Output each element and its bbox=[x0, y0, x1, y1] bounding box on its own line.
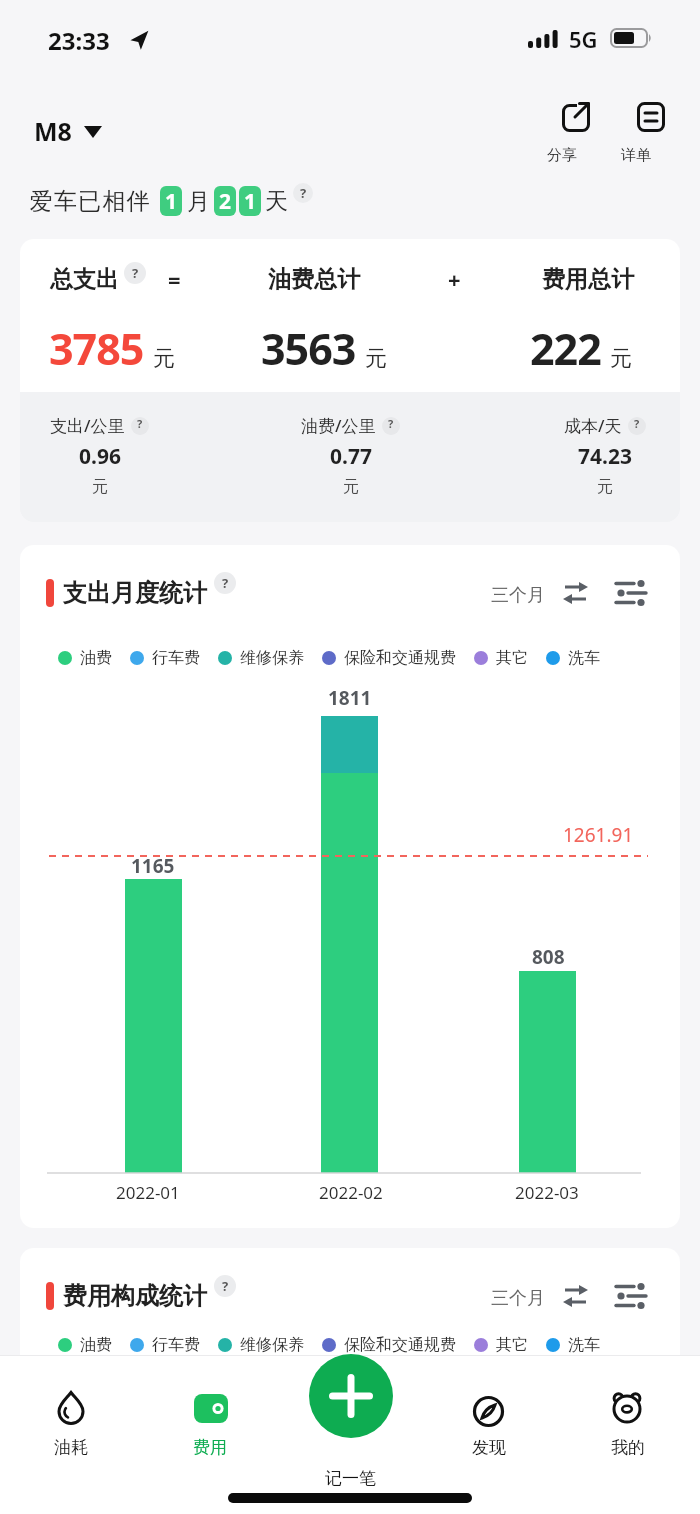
staticText: 1 bbox=[244, 187, 257, 216]
staticText: + bbox=[448, 264, 461, 294]
staticText: 油费 bbox=[80, 1335, 112, 1355]
staticText: 2022-02 bbox=[319, 1181, 383, 1204]
button[interactable] bbox=[309, 1354, 393, 1438]
staticText: M8 bbox=[34, 114, 72, 148]
staticText: 费用构成统计 bbox=[63, 1281, 207, 1311]
button[interactable]: 详单 bbox=[626, 94, 676, 168]
staticText: 记一笔 bbox=[325, 1468, 376, 1489]
staticText: = bbox=[168, 264, 181, 294]
staticText: 油耗 bbox=[54, 1437, 88, 1458]
staticText: 油费总计 bbox=[268, 265, 360, 294]
button[interactable]: 费用 bbox=[165, 1375, 255, 1460]
staticText: 1 bbox=[165, 187, 178, 216]
staticText: ? bbox=[388, 416, 394, 431]
staticText: 808 bbox=[532, 944, 565, 970]
staticText: 元 bbox=[597, 477, 613, 497]
staticText: 保险和交通规费 bbox=[344, 1335, 456, 1355]
staticText: 3785 bbox=[49, 319, 144, 378]
staticText: 23:33 bbox=[48, 24, 110, 57]
staticText: 费用 bbox=[193, 1437, 227, 1458]
button[interactable] bbox=[612, 1280, 652, 1312]
staticText: 分享 bbox=[547, 146, 577, 165]
staticText: 元 bbox=[153, 345, 175, 373]
button[interactable]: 发现 bbox=[444, 1375, 534, 1460]
staticText: 保险和交通规费 bbox=[344, 648, 456, 668]
staticText: ? bbox=[132, 264, 139, 282]
button[interactable] bbox=[28, 108, 110, 154]
staticText: ? bbox=[222, 1277, 229, 1295]
staticText: 月 bbox=[187, 187, 210, 216]
staticText: ? bbox=[137, 416, 143, 431]
staticText: 三个月 bbox=[491, 1287, 545, 1310]
button[interactable]: 分享 bbox=[552, 94, 602, 168]
button[interactable]: 我的 bbox=[583, 1375, 673, 1460]
staticText: 1165 bbox=[131, 853, 175, 879]
button[interactable]: 油耗 bbox=[26, 1375, 116, 1460]
staticText: 1261.91 bbox=[563, 822, 634, 848]
staticText: 成本/天 bbox=[564, 414, 622, 437]
staticText: ? bbox=[222, 574, 229, 592]
staticText: ? bbox=[634, 416, 640, 431]
button[interactable] bbox=[558, 1280, 594, 1312]
staticText: 2022-01 bbox=[116, 1181, 180, 1204]
staticText: 详单 bbox=[621, 146, 651, 165]
staticText: 元 bbox=[610, 345, 632, 373]
staticText: 1811 bbox=[328, 685, 372, 711]
staticText: 我的 bbox=[611, 1437, 645, 1458]
staticText: 0.96 bbox=[79, 442, 121, 471]
staticText: 天 bbox=[265, 187, 288, 216]
staticText: 费用总计 bbox=[542, 265, 634, 294]
staticText: 行车费 bbox=[152, 1335, 200, 1355]
staticText: 行车费 bbox=[152, 648, 200, 668]
staticText: 支出月度统计 bbox=[63, 578, 207, 608]
staticText: 爱车已相伴 bbox=[29, 187, 150, 216]
staticText: 2022-03 bbox=[515, 1181, 579, 1204]
button[interactable]: 三个月 bbox=[458, 571, 578, 619]
staticText: 三个月 bbox=[491, 584, 545, 607]
staticText: 洗车 bbox=[568, 648, 600, 668]
staticText: 支出/公里 bbox=[50, 414, 125, 437]
button[interactable]: 三个月 bbox=[458, 1274, 578, 1322]
staticText: 74.23 bbox=[578, 442, 632, 471]
staticText: 维修保养 bbox=[240, 1335, 304, 1355]
staticText: 油费 bbox=[80, 648, 112, 668]
staticText: 洗车 bbox=[568, 1335, 600, 1355]
staticText: 2 bbox=[219, 187, 232, 216]
button[interactable] bbox=[612, 577, 652, 609]
staticText: 油费/公里 bbox=[301, 414, 376, 437]
staticText: 总支出 bbox=[50, 265, 119, 294]
staticText: 元 bbox=[92, 477, 108, 497]
staticText: 元 bbox=[343, 477, 359, 497]
staticText: 其它 bbox=[496, 648, 528, 668]
staticText: 其它 bbox=[496, 1335, 528, 1355]
staticText: 0.77 bbox=[330, 442, 372, 471]
staticText: 222 bbox=[530, 319, 601, 378]
staticText: 5G bbox=[569, 24, 598, 54]
staticText: 发现 bbox=[472, 1437, 506, 1458]
staticText: 3563 bbox=[261, 319, 356, 378]
staticText: 维修保养 bbox=[240, 648, 304, 668]
staticText: ? bbox=[300, 184, 307, 202]
staticText: 元 bbox=[365, 345, 387, 373]
button[interactable] bbox=[558, 577, 594, 609]
